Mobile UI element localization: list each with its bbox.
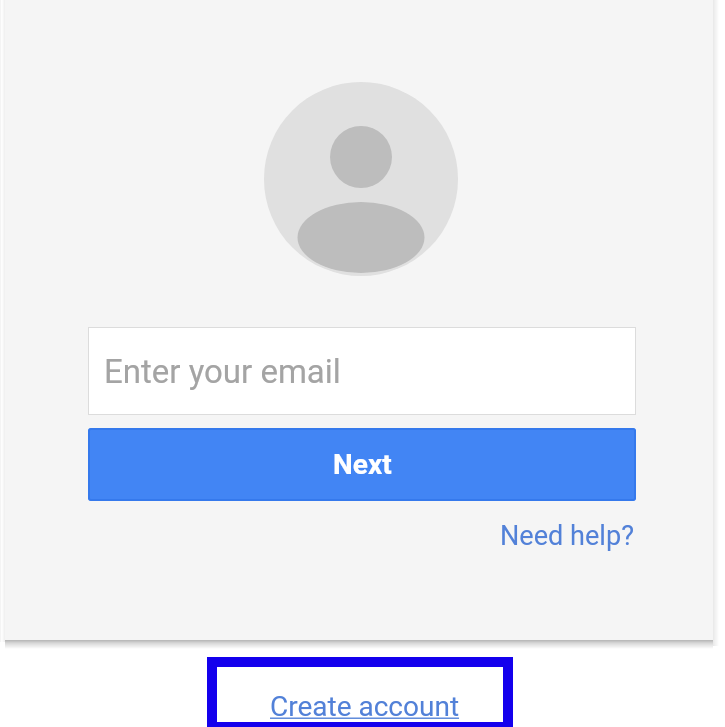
staticText: Enter your email xyxy=(104,352,341,391)
staticText: Next xyxy=(333,448,392,481)
staticText: Create account xyxy=(270,690,460,723)
staticText: Need help? xyxy=(500,520,634,552)
button[interactable]: Next xyxy=(88,428,636,501)
button[interactable]: Enter your email xyxy=(88,327,636,415)
button[interactable]: Need help? xyxy=(488,508,646,564)
button[interactable]: Create account xyxy=(207,657,513,727)
